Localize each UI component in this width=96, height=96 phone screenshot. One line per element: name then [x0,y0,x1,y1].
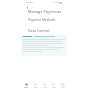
button[interactable]: Tab 4 [49,83,58,91]
button[interactable]: Tab 2 [31,83,40,91]
staticText: Payment Methods [28,18,56,22]
button[interactable]: More options [59,5,63,9]
staticText: Data Control [28,28,50,33]
button[interactable]: Tab 5 [58,83,67,91]
button[interactable]: Tab 1 [21,83,31,91]
button[interactable]: Back [25,5,29,9]
button[interactable]: Tab 3 [40,83,49,91]
staticText: Manage Payments [28,9,62,14]
button[interactable] [21,35,67,56]
